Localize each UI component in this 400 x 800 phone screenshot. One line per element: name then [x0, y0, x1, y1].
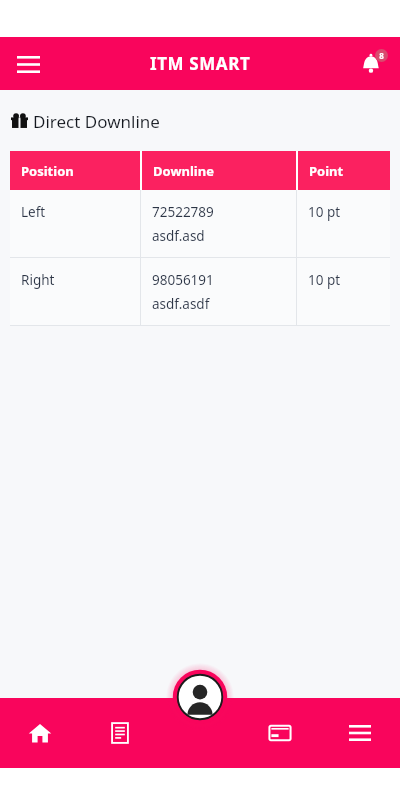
staticText: Left — [21, 203, 46, 221]
staticText: asdf.asdf — [152, 295, 210, 313]
staticText: Direct Downline — [33, 110, 160, 133]
button[interactable]: Notifications, 8 unread — [350, 42, 394, 86]
button[interactable]: Point — [298, 151, 390, 190]
staticText: 98056191 — [152, 271, 214, 289]
button[interactable]: Wallet — [240, 698, 320, 768]
staticText: 10 pt — [308, 271, 341, 289]
staticText: Right — [21, 271, 55, 289]
staticText: Point — [309, 162, 344, 180]
button[interactable]: Open navigation menu — [6, 42, 50, 86]
button[interactable]: Downline — [142, 151, 296, 190]
staticText: 8 — [379, 50, 384, 61]
button[interactable]: Right — [10, 258, 390, 325]
staticText: asdf.asd — [152, 227, 205, 245]
staticText: ITM SMART — [150, 52, 251, 75]
button[interactable]: Home — [0, 698, 80, 768]
staticText: Downline — [153, 162, 214, 180]
staticText: Position — [21, 162, 74, 180]
button[interactable]: Position — [10, 151, 140, 190]
button[interactable]: Left — [10, 190, 390, 257]
button[interactable]: Profile — [166, 663, 234, 731]
button[interactable]: More — [320, 698, 400, 768]
button[interactable]: Reports — [80, 698, 160, 768]
staticText: 10 pt — [308, 203, 341, 221]
staticText: 72522789 — [152, 203, 214, 221]
